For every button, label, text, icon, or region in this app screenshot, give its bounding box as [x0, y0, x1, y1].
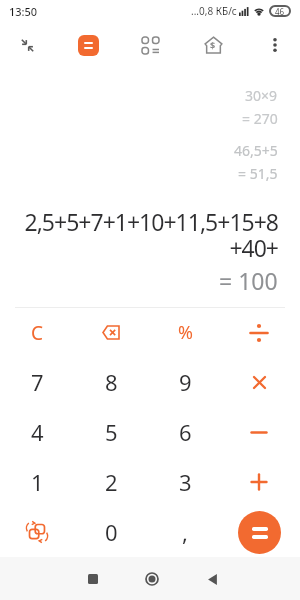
staticText: 2	[105, 467, 118, 497]
button[interactable]	[0, 507, 74, 557]
button[interactable]	[222, 507, 296, 557]
button[interactable]	[222, 357, 296, 407]
staticText: 2,5+5+7+1+10+11,5+15+8 +40+	[24, 206, 278, 264]
button[interactable]: 7	[0, 357, 74, 407]
button[interactable]: 3	[148, 457, 222, 507]
staticText: 30×9	[245, 86, 278, 105]
button[interactable]	[78, 35, 99, 56]
staticText: 46,5+5	[234, 141, 278, 160]
button[interactable]	[134, 561, 170, 597]
button[interactable]: C	[0, 308, 74, 357]
button[interactable]: ,	[148, 507, 222, 557]
button[interactable]	[222, 308, 296, 357]
staticText: 46	[275, 6, 285, 17]
staticText: 1	[31, 467, 44, 497]
staticText: 9	[179, 367, 192, 397]
button[interactable]: 2	[74, 457, 148, 507]
button[interactable]	[75, 561, 111, 597]
button[interactable]	[74, 308, 148, 357]
button[interactable]: %	[148, 308, 222, 357]
staticText: = 51,5	[238, 164, 278, 183]
staticText: = 100	[219, 265, 278, 296]
staticText: 0	[105, 517, 118, 547]
button[interactable]: 8	[74, 357, 148, 407]
staticText: 5	[105, 417, 118, 447]
button[interactable]	[194, 561, 230, 597]
button[interactable]	[137, 32, 163, 58]
button[interactable]	[238, 511, 281, 554]
staticText: 3	[179, 467, 192, 497]
button[interactable]: 4	[0, 407, 74, 457]
staticText: ...0,8 КБ/с	[191, 4, 237, 18]
staticText: 7	[31, 367, 44, 397]
staticText: 4	[31, 417, 44, 447]
button[interactable]	[264, 34, 286, 56]
button[interactable]: 9	[148, 357, 222, 407]
staticText: 6	[179, 417, 192, 447]
button[interactable]: 1	[0, 457, 74, 507]
button[interactable]: $	[200, 32, 226, 58]
staticText: C	[31, 320, 44, 346]
button[interactable]: 5	[74, 407, 148, 457]
staticText: = 270	[242, 109, 278, 128]
button[interactable]	[222, 407, 296, 457]
staticText: ,	[182, 517, 188, 547]
staticText: 13:50	[9, 4, 38, 19]
button[interactable]: 0	[74, 507, 148, 557]
button[interactable]	[222, 457, 296, 507]
button[interactable]	[14, 32, 40, 58]
staticText: $	[210, 39, 216, 51]
button[interactable]: 6	[148, 407, 222, 457]
staticText: %	[178, 320, 193, 345]
staticText: 8	[105, 367, 118, 397]
